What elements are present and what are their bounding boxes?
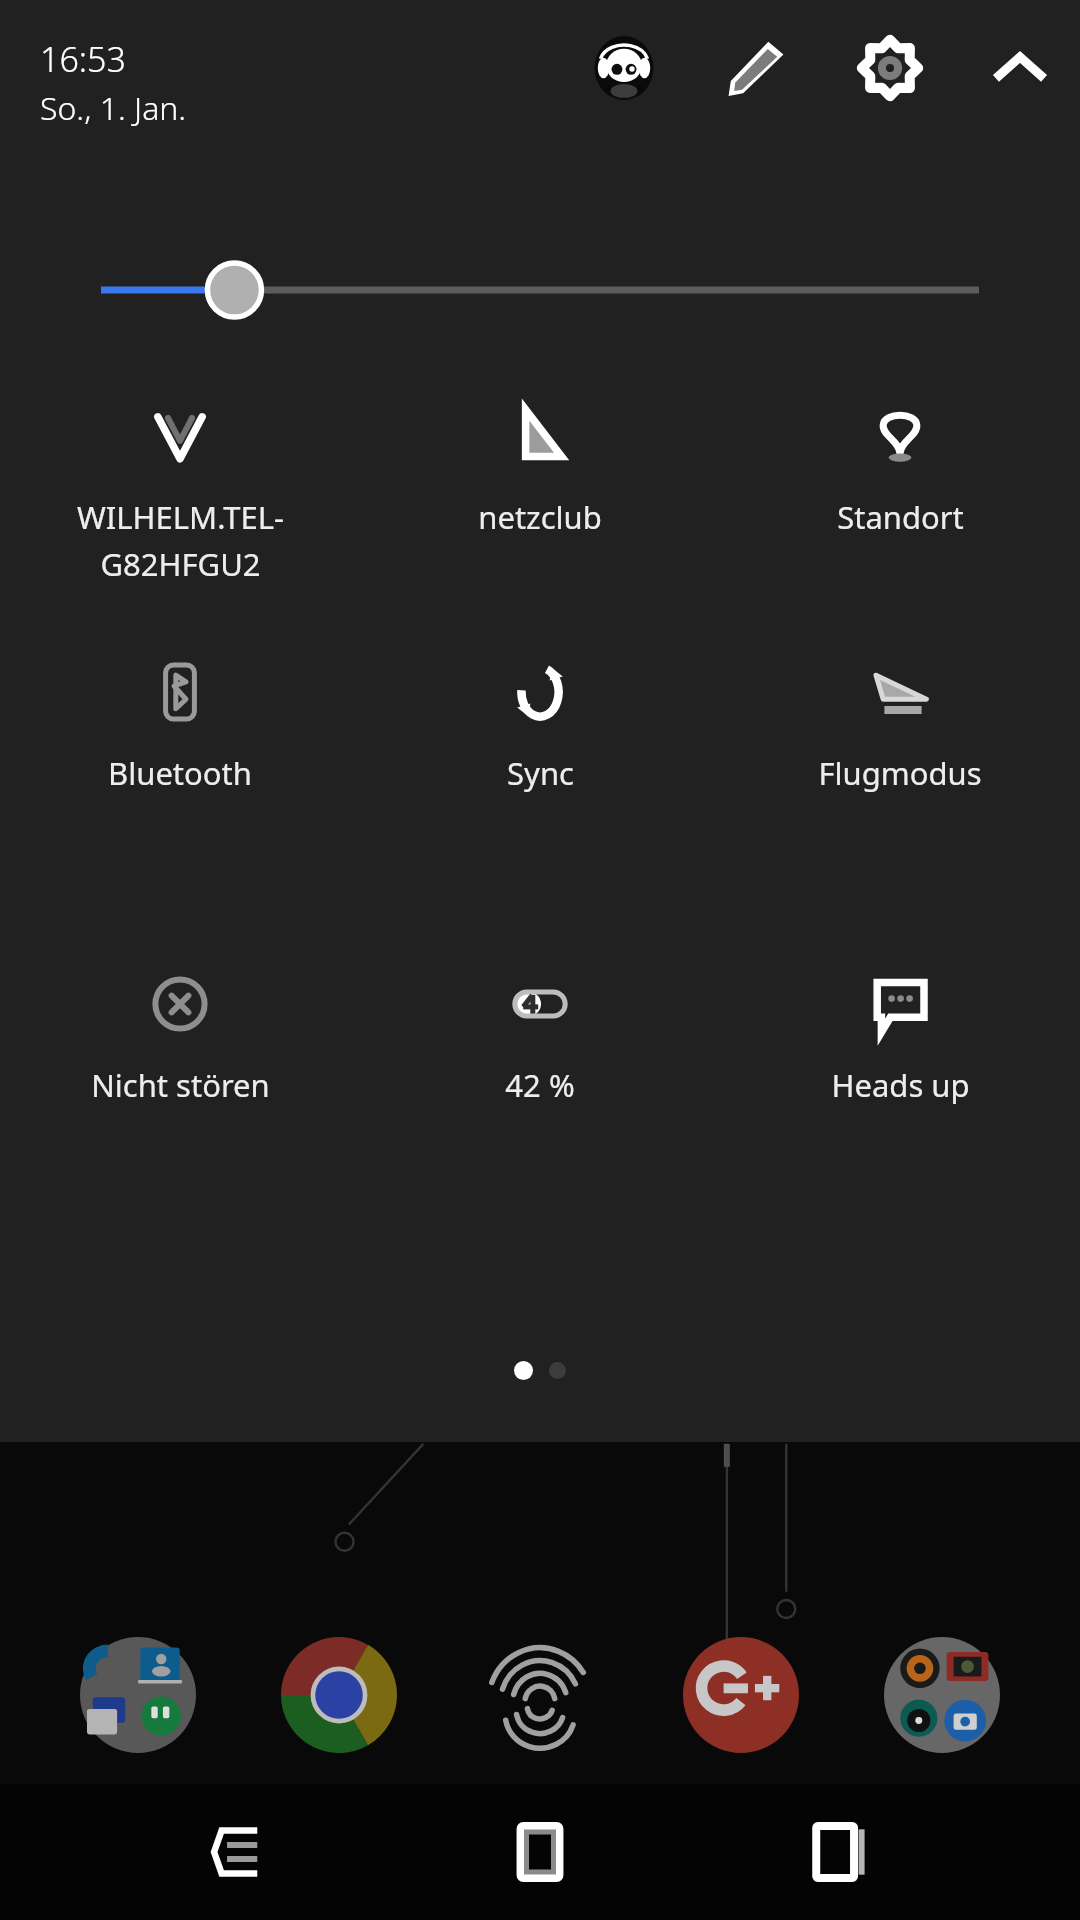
button[interactable]: Flugmodus: [720, 654, 1080, 844]
button[interactable]: Brightness: [0, 254, 1080, 326]
button[interactable]: Heads up: [720, 966, 1080, 1156]
button[interactable]: 16:53: [40, 36, 187, 130]
button[interactable]: Recents: [780, 1792, 900, 1912]
button[interactable]: Settings: [852, 30, 928, 106]
button[interactable]: Standort: [720, 398, 1080, 588]
button[interactable]: Photo folder: [879, 1632, 1005, 1758]
staticText: Sync: [507, 752, 574, 794]
staticText: netzclub: [478, 496, 602, 538]
staticText: Flugmodus: [818, 752, 982, 794]
button[interactable]: Nicht stören: [0, 966, 360, 1156]
button[interactable]: Communication folder: [75, 1632, 201, 1758]
button[interactable]: Collapse: [982, 30, 1058, 106]
button[interactable]: Home: [480, 1792, 600, 1912]
button[interactable]: Google Plus: [678, 1632, 804, 1758]
staticText: Standort: [837, 496, 964, 538]
button[interactable]: WILHELM.TEL- G82HFGU2: [0, 398, 360, 588]
button[interactable]: Fingerprint: [477, 1632, 603, 1758]
staticText: WILHELM.TEL- G82HFGU2: [77, 496, 284, 585]
button[interactable]: Back: [180, 1792, 300, 1912]
staticText: 16:53: [40, 36, 126, 82]
staticText: So., 1. Jan.: [40, 86, 187, 130]
button[interactable]: Sync: [360, 654, 720, 844]
button[interactable]: User profile: [586, 30, 662, 106]
staticText: Bluetooth: [108, 752, 252, 794]
staticText: Heads up: [831, 1064, 970, 1106]
button[interactable]: netzclub: [360, 398, 720, 588]
staticText: Nicht stören: [91, 1064, 270, 1106]
button[interactable]: Edit: [718, 30, 794, 106]
button[interactable]: 42 %: [360, 966, 720, 1156]
staticText: 42 %: [505, 1064, 575, 1106]
button[interactable]: Chrome: [276, 1632, 402, 1758]
button[interactable]: Bluetooth: [0, 654, 360, 844]
